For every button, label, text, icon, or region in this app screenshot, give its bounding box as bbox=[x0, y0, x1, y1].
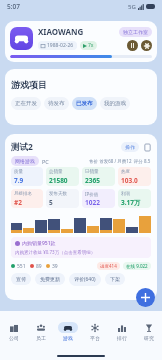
staticText: 2365 bbox=[85, 176, 100, 184]
staticText: 待发布 bbox=[48, 100, 65, 107]
button[interactable]: 平台 bbox=[81, 311, 108, 351]
staticText: 员工 bbox=[36, 335, 46, 341]
staticText: 1022 bbox=[85, 198, 100, 206]
button[interactable]: 免费更新 bbox=[35, 273, 65, 285]
staticText: 进度414 bbox=[100, 263, 117, 269]
staticText: 5 bbox=[49, 198, 53, 206]
staticText: 发售天数 bbox=[49, 191, 67, 197]
staticText: 测试2 bbox=[11, 141, 33, 153]
button[interactable]: 7x bbox=[80, 41, 97, 50]
staticText: 利润 bbox=[121, 191, 130, 197]
button[interactable]: 正在开发 bbox=[11, 97, 41, 110]
staticText: 5:07 bbox=[7, 2, 20, 11]
staticText: 3.17万 bbox=[121, 198, 141, 206]
staticText: 在线 9.022 bbox=[126, 263, 148, 269]
button[interactable]: 操作 bbox=[121, 142, 139, 152]
staticText: IP价值 bbox=[85, 191, 99, 197]
staticText: 103.0 bbox=[121, 176, 138, 184]
staticText: 内购销量951款 bbox=[22, 240, 56, 247]
button[interactable]: 已发布 bbox=[72, 97, 97, 110]
button[interactable]: 待发布 bbox=[44, 97, 69, 110]
button[interactable]: 评价(640) bbox=[69, 273, 101, 286]
button[interactable]: 宣传 bbox=[11, 273, 31, 285]
staticText: 1988-02-26 bbox=[47, 42, 74, 49]
staticText: 总销量 bbox=[49, 169, 63, 175]
staticText: 551 bbox=[17, 263, 26, 270]
staticText: 公司 bbox=[9, 335, 19, 341]
button[interactable]: Details bbox=[143, 143, 151, 151]
staticText: 宣传 bbox=[16, 276, 26, 282]
staticText: 内购累计收益 ¥0.73万（点击查看明细） bbox=[15, 249, 96, 255]
staticText: PC bbox=[42, 158, 49, 165]
staticText: #2 bbox=[14, 198, 22, 206]
staticText: 免费更新 bbox=[40, 276, 60, 282]
staticText: 月榜排名 bbox=[14, 191, 32, 197]
staticText: XIAOWANG bbox=[38, 26, 84, 37]
button[interactable]: 独立工作室 bbox=[119, 27, 152, 37]
staticText: 已发布 bbox=[76, 100, 93, 107]
staticText: 我的游戏 bbox=[104, 100, 126, 107]
staticText: 平台 bbox=[90, 335, 100, 341]
button[interactable]: Pause bbox=[127, 40, 138, 51]
staticText: 5G bbox=[128, 3, 136, 11]
button[interactable]: 游戏 bbox=[54, 311, 81, 351]
button[interactable]: 我的游戏 bbox=[100, 97, 130, 110]
staticText: 日销量 bbox=[85, 169, 99, 175]
button[interactable]: Settings bbox=[141, 40, 152, 51]
staticText: 89 bbox=[36, 263, 42, 270]
staticText: 正在开发 bbox=[15, 100, 37, 107]
staticText: 游戏 bbox=[63, 335, 73, 341]
staticText: 售价 首发68 / 月费12 评分 8.5 bbox=[89, 158, 151, 164]
staticText: 独立工作室 bbox=[123, 29, 148, 35]
staticText: 游戏项目 bbox=[11, 79, 47, 90]
staticText: 39 bbox=[52, 263, 58, 270]
button[interactable]: 研究 bbox=[135, 311, 162, 351]
button[interactable]: 下架 bbox=[105, 273, 125, 285]
button[interactable]: 排行 bbox=[108, 311, 135, 351]
staticText: 7x bbox=[88, 42, 94, 49]
staticText: 下架 bbox=[110, 276, 120, 282]
button[interactable]: Add bbox=[136, 288, 155, 307]
staticText: 操作 bbox=[125, 144, 135, 150]
staticText: 排行 bbox=[117, 335, 127, 341]
staticText: 质量 bbox=[14, 169, 23, 175]
staticText: 7.9 bbox=[14, 176, 24, 184]
button[interactable]: 公司 bbox=[0, 311, 27, 351]
staticText: 网络游戏 bbox=[15, 158, 35, 164]
staticText: 21580 bbox=[49, 176, 68, 184]
staticText: 热度 bbox=[121, 169, 130, 175]
button[interactable]: 员工 bbox=[27, 311, 54, 351]
staticText: 研究 bbox=[144, 335, 154, 341]
staticText: 评价(640) bbox=[74, 276, 96, 283]
